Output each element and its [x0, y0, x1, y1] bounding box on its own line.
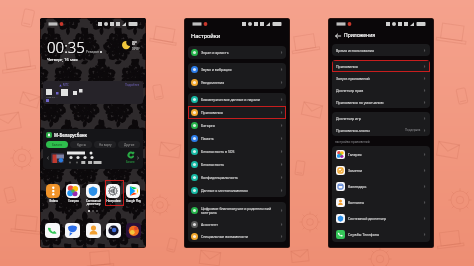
button[interactable]: Галерея	[332, 146, 430, 162]
staticText: Курсы	[77, 143, 86, 147]
button[interactable]: App	[86, 223, 101, 238]
staticText: 8°	[132, 40, 138, 47]
staticText: Баланс	[52, 143, 63, 147]
staticText: Звуки и вибрация	[201, 67, 232, 72]
button[interactable]: Биометрические данные и пароли	[188, 93, 286, 106]
button[interactable]: Звуки и вибрация	[188, 63, 286, 76]
button[interactable]: Календарь	[332, 178, 430, 194]
staticText: настройки приложений	[335, 140, 370, 144]
staticText: Файлы	[49, 199, 58, 203]
button[interactable]: Службы Телефона	[332, 226, 430, 242]
staticText: +375 29 ...	[46, 95, 58, 98]
button[interactable]: Экран и яркость	[188, 46, 286, 59]
staticText: Диспетчер игр	[336, 116, 361, 121]
staticText: Специальные возможности	[201, 234, 249, 239]
staticText: Уведомления	[201, 80, 225, 85]
staticText: Галерея	[68, 199, 79, 203]
staticText: Резидан	[86, 50, 99, 54]
staticText: М-Беларусбанк	[54, 132, 88, 138]
staticText: Безопасность	[201, 162, 225, 167]
staticText: Приложения-клоны	[336, 128, 370, 133]
button[interactable]: Данные о местоположении	[188, 184, 286, 197]
button[interactable]: Заметки	[332, 162, 430, 178]
button[interactable]: Галерея	[64, 184, 82, 203]
staticText: Контакты	[348, 200, 365, 205]
staticText: Время использования	[336, 48, 375, 53]
button[interactable]: Back	[333, 31, 342, 40]
button[interactable]: Системный диспетчер	[332, 210, 430, 226]
staticText: Системный диспетчер	[348, 216, 387, 221]
button[interactable]: Батарея	[188, 119, 286, 132]
staticText: Память	[201, 136, 214, 141]
staticText: Батарея	[201, 123, 215, 128]
button[interactable]: Другие	[118, 141, 140, 148]
button[interactable]: Google Play	[124, 184, 142, 203]
staticText: Галерея	[348, 152, 362, 157]
staticText: Подробнее	[125, 83, 140, 87]
staticText: Биометрические данные и пароли	[201, 97, 260, 102]
staticText: 00:35	[47, 37, 85, 57]
staticText: Google Play	[126, 199, 141, 203]
staticText: Другие	[124, 143, 135, 147]
button[interactable]: Баланс	[46, 141, 68, 148]
staticText: Цифровое благополучие и родительский кон…	[201, 206, 278, 215]
staticText: Приложения	[344, 32, 376, 39]
button[interactable]: М-Беларусбанк	[43, 129, 143, 169]
staticText: Календарь	[348, 184, 367, 189]
button[interactable]: Контакты	[332, 194, 430, 210]
button[interactable]: Курсы	[70, 141, 92, 148]
button[interactable]: Специальные возможности	[188, 230, 286, 242]
staticText: Безопасность в SOS	[201, 149, 235, 154]
staticText: Конфиденциальность	[201, 175, 239, 180]
button[interactable]: Приложения	[332, 60, 430, 72]
button[interactable]: Файлы	[44, 184, 62, 203]
button[interactable]: Приложения-клоны	[332, 124, 430, 136]
button[interactable]: Запуск приложений	[332, 72, 430, 84]
button[interactable]: Уведомления	[188, 76, 286, 89]
button[interactable]: App	[106, 223, 121, 238]
button[interactable]: Диспетчер игр	[332, 112, 430, 124]
button[interactable]: Безопасность в SOS	[188, 145, 286, 158]
staticText: Баланс	[126, 160, 135, 164]
button[interactable]: Конфиденциальность	[188, 171, 286, 184]
button[interactable]: Ассистент	[188, 218, 286, 230]
button[interactable]: Цифровое благополучие и родительский кон…	[188, 202, 286, 218]
staticText: Системный диспетчер	[86, 199, 101, 206]
staticText: МТС	[63, 83, 69, 87]
button[interactable]: МТС	[43, 81, 143, 104]
staticText: Ассистент	[201, 222, 218, 227]
button[interactable]: Приложения	[188, 106, 286, 119]
button[interactable]: Диспетчер прав	[332, 84, 430, 96]
staticText: 10°/5°	[132, 47, 140, 51]
staticText: Поддержка	[405, 128, 421, 132]
staticText: Четверг, 16 мая	[47, 57, 78, 62]
staticText: Экран и яркость	[201, 50, 229, 55]
staticText: Настройки	[191, 32, 221, 40]
button[interactable]: Память	[188, 132, 286, 145]
staticText: Настройки	[106, 199, 121, 203]
staticText: Запуск приложений	[336, 76, 370, 81]
button[interactable]: На карту	[94, 141, 116, 148]
staticText: Приложения	[336, 64, 358, 69]
staticText: Заметки	[348, 168, 363, 173]
button[interactable]: Время использования	[332, 44, 430, 56]
staticText: Приложения	[201, 110, 223, 115]
staticText: Приложения по умолчанию	[336, 100, 384, 105]
staticText: Диспетчер прав	[336, 88, 364, 93]
staticText: Данные о местоположении	[201, 188, 248, 193]
button[interactable]: App	[45, 223, 60, 238]
staticText: Службы Телефона	[348, 232, 379, 237]
button[interactable]: Безопасность	[188, 158, 286, 171]
button[interactable]: Настройки	[104, 184, 122, 203]
button[interactable]: App	[126, 223, 141, 238]
button[interactable]: Системный диспетчер	[84, 184, 102, 206]
button[interactable]: App	[65, 223, 80, 238]
staticText: На карту	[99, 143, 112, 147]
button[interactable]: Приложения по умолчанию	[332, 96, 430, 108]
